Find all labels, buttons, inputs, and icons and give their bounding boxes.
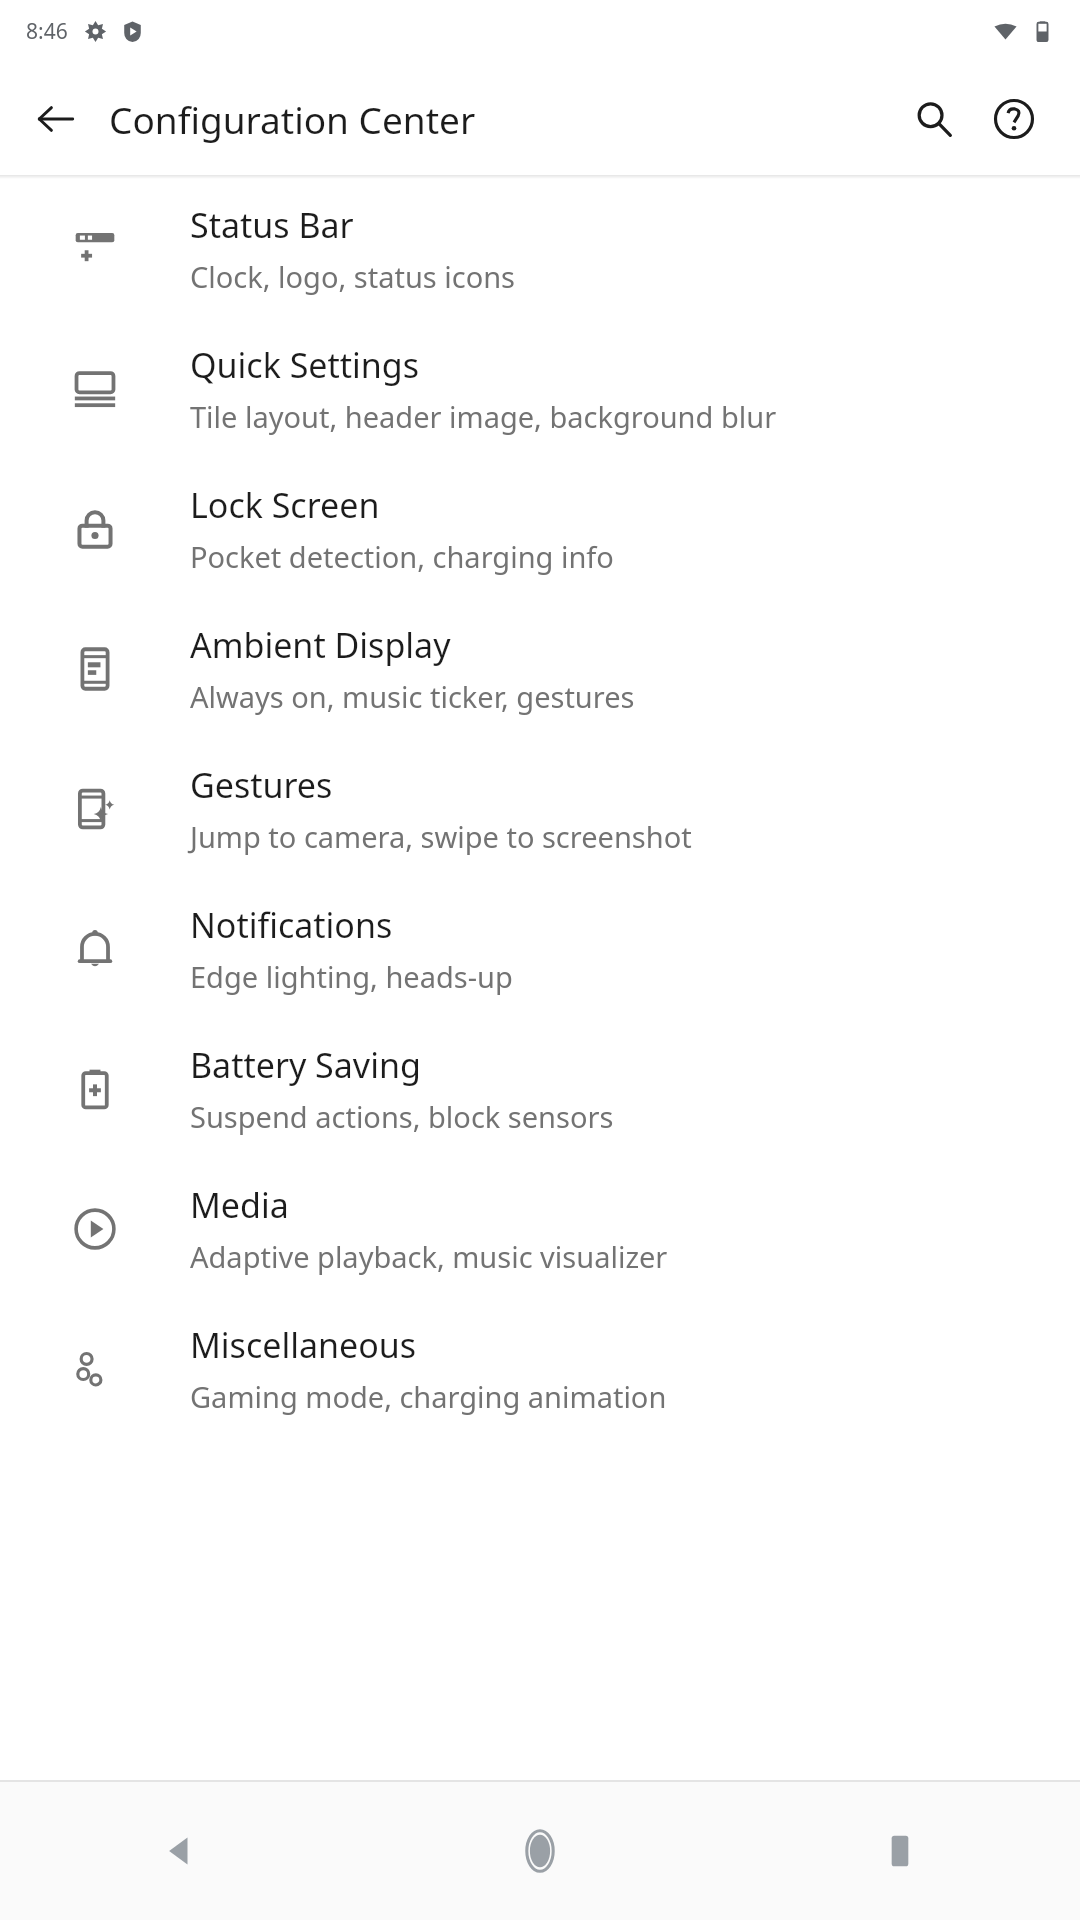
staticText: Notifications bbox=[190, 902, 393, 948]
staticText: Gaming mode, charging animation bbox=[190, 1377, 667, 1416]
staticText: Gestures bbox=[190, 762, 333, 808]
staticText: Pocket detection, charging info bbox=[190, 537, 614, 576]
button[interactable]: Status Bar bbox=[0, 179, 1080, 319]
staticText: Clock, logo, status icons bbox=[190, 257, 516, 296]
button[interactable]: Search bbox=[894, 79, 974, 159]
staticText: 8:46 bbox=[26, 17, 68, 46]
staticText: Configuration Center bbox=[109, 94, 894, 144]
button[interactable]: Help bbox=[974, 79, 1054, 159]
button[interactable]: Ambient Display bbox=[0, 599, 1080, 739]
button[interactable]: Battery Saving bbox=[0, 1019, 1080, 1159]
button[interactable]: Notifications bbox=[0, 879, 1080, 1019]
staticText: Miscellaneous bbox=[190, 1322, 417, 1368]
button[interactable]: Lock Screen bbox=[0, 459, 1080, 599]
staticText: Always on, music ticker, gestures bbox=[190, 677, 635, 716]
button[interactable]: Gestures bbox=[0, 739, 1080, 879]
staticText: Adaptive playback, music visualizer bbox=[190, 1237, 668, 1276]
staticText: Ambient Display bbox=[190, 622, 451, 668]
staticText: Quick Settings bbox=[190, 342, 420, 388]
button[interactable]: Recents bbox=[720, 1782, 1080, 1920]
staticText: Tile layout, header image, background bl… bbox=[190, 397, 777, 436]
button[interactable]: Quick Settings bbox=[0, 319, 1080, 459]
staticText: Battery Saving bbox=[190, 1042, 421, 1088]
button[interactable]: Back bbox=[0, 1782, 360, 1920]
staticText: Suspend actions, block sensors bbox=[190, 1097, 614, 1136]
button[interactable]: Home bbox=[360, 1782, 720, 1920]
button[interactable]: Media bbox=[0, 1159, 1080, 1299]
staticText: Edge lighting, heads-up bbox=[190, 957, 513, 996]
staticText: Lock Screen bbox=[190, 482, 380, 528]
button[interactable]: Back bbox=[20, 83, 92, 155]
staticText: Jump to camera, swipe to screenshot bbox=[190, 817, 692, 856]
staticText: Status Bar bbox=[190, 202, 354, 248]
button[interactable]: Miscellaneous bbox=[0, 1299, 1080, 1439]
staticText: Media bbox=[190, 1182, 289, 1228]
